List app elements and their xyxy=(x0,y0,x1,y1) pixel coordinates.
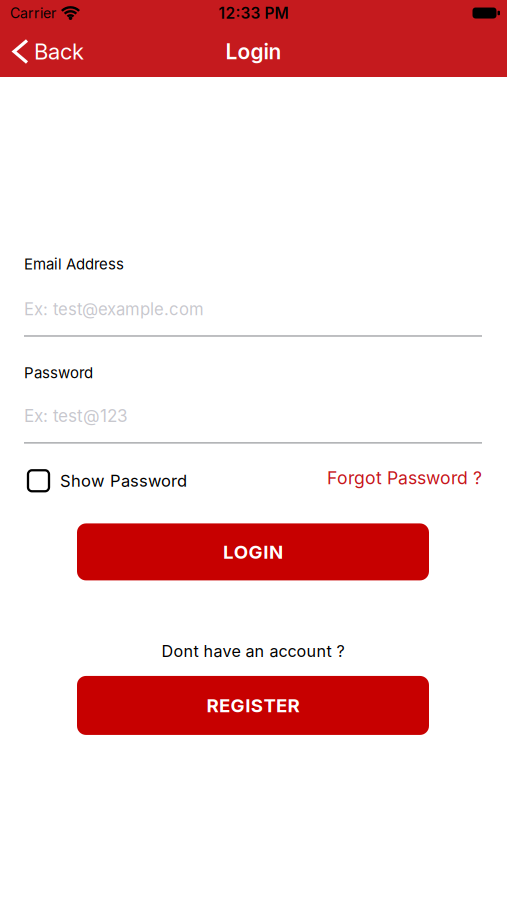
staticText: Show Password xyxy=(60,471,187,491)
staticText: Carrier xyxy=(10,4,56,21)
staticText: Login xyxy=(225,39,281,64)
button[interactable]: LOGIN xyxy=(77,523,429,580)
staticText: Dont have an account ? xyxy=(161,641,344,661)
staticText: Ex: test@123 xyxy=(24,405,128,426)
staticText: LOGIN xyxy=(223,541,283,563)
button[interactable]: Show Password xyxy=(24,470,187,491)
staticText: Email Address xyxy=(24,255,124,273)
button[interactable]: Forgot Password ? xyxy=(327,470,482,491)
staticText: Password xyxy=(24,364,93,382)
staticText: Ex: test@example.com xyxy=(24,299,204,319)
button[interactable]: Back xyxy=(0,38,84,65)
staticText: REGISTER xyxy=(206,694,300,717)
staticText: Forgot Password ? xyxy=(327,467,482,488)
staticText: Back xyxy=(34,38,84,65)
button[interactable]: REGISTER xyxy=(77,676,429,735)
staticText: 12:33 PM xyxy=(218,4,288,22)
